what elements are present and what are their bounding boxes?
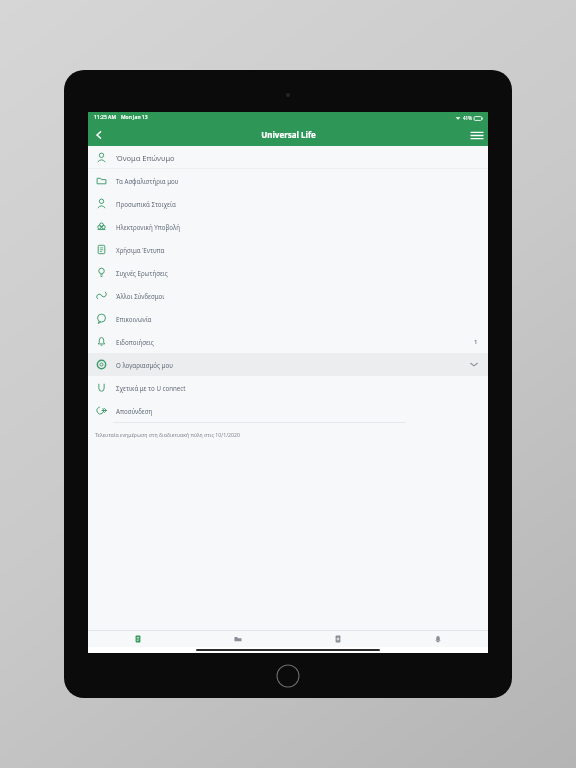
button[interactable]: Ο λογαριασμός μου bbox=[88, 353, 488, 376]
staticText: Προσωπικά Στοιχεία bbox=[116, 200, 176, 208]
button[interactable]: Άλλοι Σύνδεσμοι bbox=[88, 284, 488, 307]
button[interactable]: Επικοινωνία bbox=[88, 307, 488, 330]
button[interactable]: Συχνές Ερωτήσεις bbox=[88, 261, 488, 284]
staticText: Ο λογαριασμός μου bbox=[116, 361, 173, 369]
staticText: Universal Life bbox=[261, 129, 316, 140]
button[interactable]: Policies bbox=[88, 631, 188, 647]
staticText: 41% bbox=[463, 115, 472, 121]
button[interactable]: Ηλεκτρονική Υποβολή bbox=[88, 215, 488, 238]
button[interactable]: Documents bbox=[188, 631, 288, 647]
button[interactable]: Notifications bbox=[388, 631, 488, 647]
staticText: Ειδοποιήσεις bbox=[116, 338, 154, 346]
staticText: Άλλοι Σύνδεσμοι bbox=[116, 292, 165, 300]
staticText: Mon Jan 13 bbox=[121, 114, 148, 121]
button[interactable]: Ειδοποιήσεις bbox=[88, 330, 488, 353]
button[interactable]: Submit bbox=[288, 631, 388, 647]
staticText: Ηλεκτρονική Υποβολή bbox=[116, 223, 180, 231]
staticText: 1 bbox=[474, 338, 478, 346]
button[interactable]: Προσωπικά Στοιχεία bbox=[88, 192, 488, 215]
button[interactable]: Χρήσιμα Έντυπα bbox=[88, 238, 488, 261]
button[interactable]: Back bbox=[88, 124, 110, 146]
staticText: Αποσύνδεση bbox=[116, 407, 153, 415]
staticText: Σχετικά με το U connect bbox=[116, 384, 186, 392]
staticText: Όνομα Επώνυμο bbox=[116, 153, 175, 163]
button[interactable]: Όνομα Επώνυμο bbox=[88, 146, 488, 169]
staticText: Χρήσιμα Έντυπα bbox=[116, 246, 165, 254]
staticText: 11:25 AM bbox=[94, 114, 116, 121]
staticText: Τελευταία ενημέρωση στη διαδικτυακή πύλη… bbox=[95, 431, 240, 438]
button[interactable]: Τα Ασφαλιστήρια μου bbox=[88, 169, 488, 192]
staticText: Συχνές Ερωτήσεις bbox=[116, 269, 168, 277]
button[interactable]: Αποσύνδεση bbox=[88, 399, 488, 422]
staticText: Επικοινωνία bbox=[116, 315, 152, 323]
button[interactable]: Menu bbox=[466, 124, 488, 146]
staticText: Τα Ασφαλιστήρια μου bbox=[116, 177, 179, 185]
button[interactable]: Σχετικά με το U connect bbox=[88, 376, 488, 399]
